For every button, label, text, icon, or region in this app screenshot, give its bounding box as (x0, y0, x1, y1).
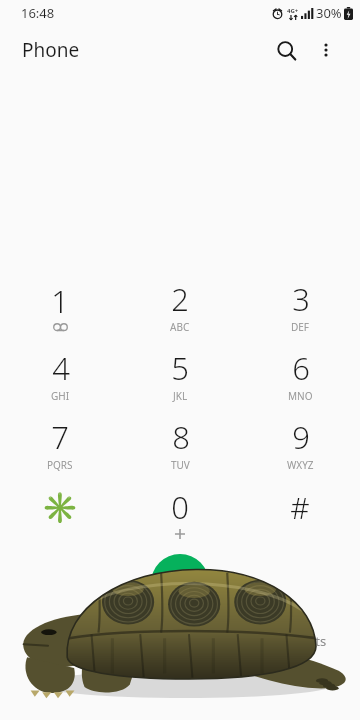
button[interactable]: Search (266, 30, 306, 70)
button[interactable]: More options (306, 30, 346, 70)
staticText: Contacts (273, 632, 327, 650)
button[interactable]: Recents (120, 613, 240, 669)
button[interactable]: 7 (0, 409, 120, 478)
staticText: 3 (292, 278, 310, 320)
staticText: 2 (171, 278, 189, 320)
staticText: 6 (292, 347, 310, 389)
staticText: DEF (291, 320, 310, 334)
button[interactable]: Contacts (240, 613, 360, 669)
button[interactable]: 4 (0, 340, 120, 409)
staticText: 7 (51, 416, 69, 458)
staticText: TUV (171, 458, 190, 472)
staticText: 16:48 (21, 4, 55, 22)
button[interactable]: 3 (240, 271, 360, 340)
staticText: Keypad (37, 632, 83, 650)
staticText: 0 (171, 486, 189, 528)
button[interactable]: # (240, 478, 360, 547)
button[interactable]: 5 (120, 340, 240, 409)
staticText: 30% (316, 4, 342, 22)
button[interactable]: Keypad (0, 613, 120, 669)
staticText: 9 (292, 416, 310, 458)
staticText: ✳ (41, 490, 79, 525)
button[interactable]: 6 (240, 340, 360, 409)
staticText: Phone (22, 37, 80, 63)
button[interactable]: 8 (120, 409, 240, 478)
staticText: ABC (170, 320, 190, 334)
staticText: Recents (156, 632, 204, 650)
staticText: 8 (172, 416, 190, 458)
staticText: JKL (173, 389, 188, 403)
staticText: 1 (51, 280, 69, 322)
button[interactable]: Call (151, 554, 209, 612)
button[interactable]: 1 (0, 271, 120, 340)
staticText: 4G+ (287, 7, 299, 15)
staticText: WXYZ (287, 458, 314, 472)
staticText: GHI (51, 389, 70, 403)
staticText: 5 (171, 347, 189, 389)
button[interactable]: 0 (120, 478, 240, 547)
staticText: PQRS (47, 458, 73, 472)
button[interactable]: 9 (240, 409, 360, 478)
button[interactable]: ✳ (0, 478, 120, 547)
staticText: 4 (52, 347, 70, 389)
staticText: # (290, 487, 310, 528)
staticText: MNO (288, 389, 313, 403)
button[interactable]: 2 (120, 271, 240, 340)
